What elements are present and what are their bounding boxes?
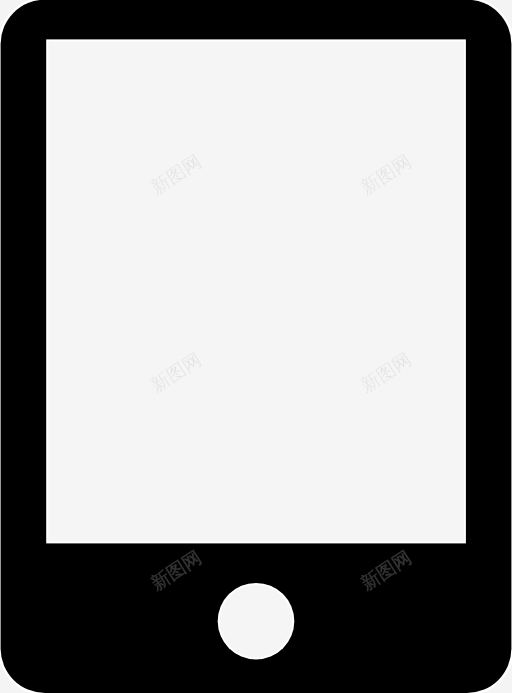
button[interactable]: Tablet device: [0, 0, 512, 693]
